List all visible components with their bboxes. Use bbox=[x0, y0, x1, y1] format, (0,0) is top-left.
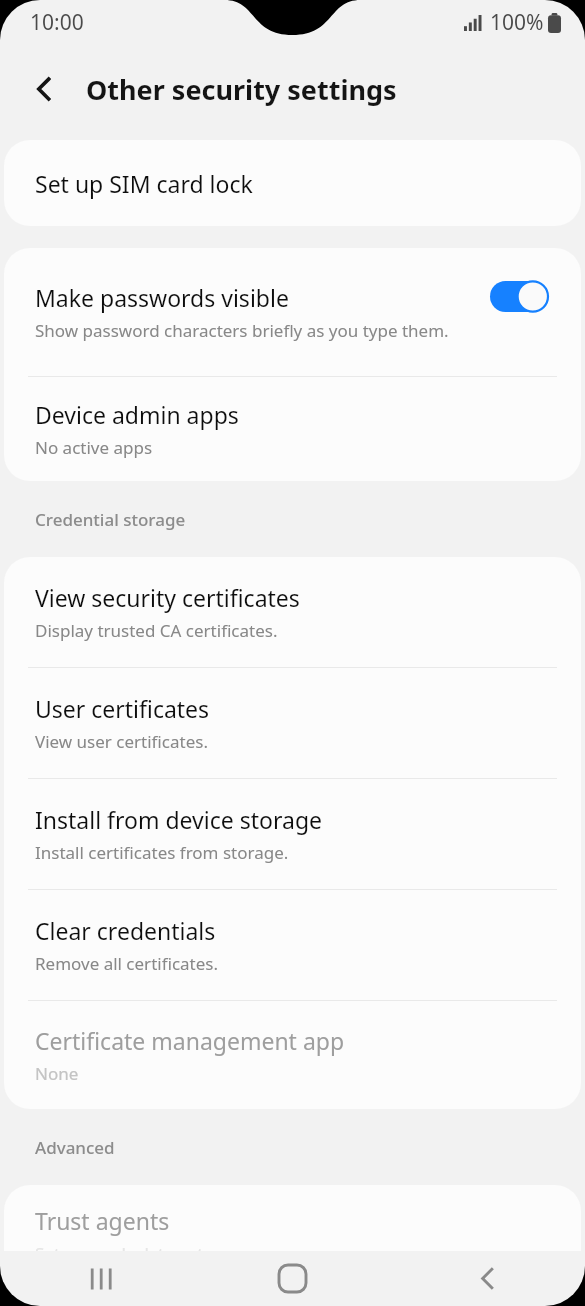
button[interactable]: Back bbox=[390, 1251, 585, 1306]
staticText: Set up SIM card lock bbox=[35, 168, 253, 199]
staticText: No active apps bbox=[35, 436, 153, 459]
button[interactable]: Make passwords visible bbox=[481, 272, 557, 320]
button[interactable]: Certificate management app bbox=[4, 1001, 581, 1109]
staticText: Advanced bbox=[35, 1136, 115, 1159]
button[interactable]: User certificates bbox=[4, 668, 581, 778]
staticText: Device admin apps bbox=[35, 399, 239, 430]
staticText: User certificates bbox=[35, 693, 210, 724]
staticText: Display trusted CA certificates. bbox=[35, 619, 278, 642]
staticText: Remove all certificates. bbox=[35, 952, 219, 975]
staticText: Install from device storage bbox=[35, 804, 322, 835]
button[interactable]: Clear credentials bbox=[4, 890, 581, 1000]
staticText: Make passwords visible bbox=[35, 282, 289, 313]
button[interactable]: Recent apps bbox=[0, 1251, 195, 1306]
button[interactable]: Make passwords visible bbox=[4, 248, 581, 376]
staticText: Other security settings bbox=[86, 71, 397, 108]
staticText: Credential storage bbox=[35, 508, 186, 531]
button[interactable]: Device admin apps bbox=[4, 377, 581, 481]
button[interactable]: Trust agents bbox=[4, 1185, 581, 1251]
staticText: 10:00 bbox=[30, 8, 84, 37]
button[interactable]: Set up SIM card lock bbox=[4, 140, 581, 226]
staticText: 100% bbox=[490, 8, 544, 37]
staticText: Show password characters briefly as you … bbox=[35, 319, 449, 342]
button[interactable]: Back bbox=[22, 67, 66, 111]
button[interactable]: Home bbox=[195, 1251, 390, 1306]
staticText: View security certificates bbox=[35, 582, 300, 613]
staticText: Install certificates from storage. bbox=[35, 841, 289, 864]
staticText: View user certificates. bbox=[35, 730, 208, 753]
staticText: None bbox=[35, 1062, 79, 1085]
button[interactable]: Install from device storage bbox=[4, 779, 581, 889]
staticText: Certificate management app bbox=[35, 1025, 345, 1056]
staticText: Clear credentials bbox=[35, 915, 216, 946]
staticText: Trust agents bbox=[35, 1205, 170, 1236]
button[interactable]: View security certificates bbox=[4, 557, 581, 667]
